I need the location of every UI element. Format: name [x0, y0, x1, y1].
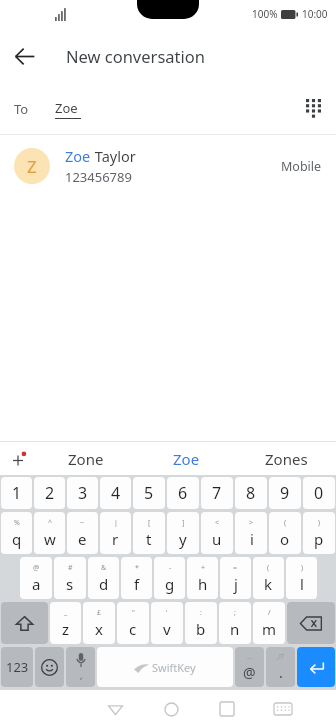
- staticText: ;: [234, 608, 236, 618]
- staticText: *: [135, 563, 139, 573]
- button[interactable]: |: [100, 512, 131, 554]
- button[interactable]: Shift: [1, 602, 48, 644]
- button[interactable]: @: [20, 557, 52, 599]
- button[interactable]: 0: [303, 477, 335, 509]
- button[interactable]: [: [133, 512, 165, 554]
- staticText: Zoe: [55, 99, 78, 117]
- staticText: %: [14, 518, 20, 528]
- staticText: m: [262, 619, 277, 639]
- staticText: 8: [246, 482, 256, 504]
- staticText: z: [62, 619, 70, 639]
- button[interactable]: &: [88, 557, 119, 599]
- button[interactable]: Dialpad: [290, 86, 336, 132]
- button[interactable]: ,!?: [266, 647, 295, 687]
- staticText: .: [279, 663, 283, 682]
- staticText: w: [44, 529, 56, 549]
- staticText: 10:00: [302, 7, 328, 21]
- button[interactable]: ': [151, 602, 183, 644]
- staticText: 7: [212, 482, 222, 504]
- staticText: 9: [280, 482, 290, 504]
- button[interactable]: Z: [0, 135, 336, 197]
- staticText: r: [112, 529, 119, 549]
- button[interactable]: ": [117, 602, 149, 644]
- button[interactable]: <: [201, 512, 233, 554]
- button[interactable]: 2: [34, 477, 65, 509]
- button[interactable]: ^: [34, 512, 65, 554]
- button[interactable]: ]: [167, 512, 199, 554]
- button[interactable]: £: [83, 602, 115, 644]
- staticText: =: [233, 563, 238, 573]
- staticText: 0: [314, 482, 324, 504]
- staticText: ): [301, 563, 304, 573]
- button[interactable]: …: [235, 647, 264, 687]
- staticText: :: [200, 608, 202, 618]
- staticText: 3: [78, 482, 88, 504]
- staticText: v: [163, 619, 171, 639]
- staticText: n: [230, 619, 240, 639]
- button[interactable]: Backspace: [287, 602, 335, 644]
- staticText: New conversation: [66, 45, 205, 67]
- button[interactable]: Emoji: [35, 647, 64, 687]
- button[interactable]: Zones: [236, 442, 336, 475]
- button[interactable]: Hide keyboard: [255, 690, 311, 728]
- button[interactable]: +: [187, 557, 218, 599]
- staticText: Zoe: [173, 449, 200, 469]
- staticText: ': [166, 608, 168, 618]
- button[interactable]: 8: [235, 477, 267, 509]
- staticText: <: [215, 518, 220, 528]
- button[interactable]: 5: [133, 477, 165, 509]
- button[interactable]: :: [185, 602, 217, 644]
- staticText: 123456789: [65, 168, 132, 186]
- staticText: 123: [6, 658, 29, 676]
- staticText: y: [179, 529, 187, 549]
- staticText: #: [68, 563, 73, 573]
- staticText: [: [148, 518, 151, 528]
- staticText: 100%: [252, 7, 278, 21]
- staticText: b: [196, 619, 206, 639]
- button[interactable]: ;: [219, 602, 251, 644]
- button[interactable]: *: [121, 557, 152, 599]
- staticText: @: [33, 563, 40, 573]
- button[interactable]: Zone: [36, 442, 136, 475]
- button[interactable]: /: [253, 602, 285, 644]
- staticText: c: [129, 619, 137, 639]
- staticText: p: [314, 529, 324, 549]
- button[interactable]: %: [1, 512, 32, 554]
- button[interactable]: _: [50, 602, 81, 644]
- button[interactable]: Recent apps: [199, 690, 255, 728]
- button[interactable]: Space: [97, 647, 233, 687]
- button[interactable]: (: [269, 512, 301, 554]
- staticText: …: [247, 652, 253, 662]
- button[interactable]: ): [286, 557, 317, 599]
- staticText: e: [78, 529, 87, 549]
- staticText: h: [198, 574, 208, 594]
- staticText: s: [66, 574, 74, 594]
- button[interactable]: Back: [87, 690, 143, 728]
- staticText: o: [280, 529, 290, 549]
- button[interactable]: Enter: [297, 647, 335, 687]
- button[interactable]: =: [220, 557, 251, 599]
- button[interactable]: ): [303, 512, 335, 554]
- button[interactable]: 123: [1, 647, 33, 687]
- button[interactable]: 9: [269, 477, 301, 509]
- staticText: 1: [12, 482, 22, 504]
- button[interactable]: More options: [0, 442, 36, 475]
- button[interactable]: Voice input: [66, 647, 95, 687]
- button[interactable]: ~: [67, 512, 98, 554]
- button[interactable]: >: [235, 512, 267, 554]
- button[interactable]: 1: [1, 477, 32, 509]
- button[interactable]: Home: [143, 690, 199, 728]
- button[interactable]: -: [154, 557, 185, 599]
- button[interactable]: Zoe: [136, 442, 236, 475]
- button[interactable]: 7: [201, 477, 233, 509]
- button[interactable]: 6: [167, 477, 199, 509]
- button[interactable]: Back: [0, 32, 48, 80]
- staticText: d: [99, 574, 109, 594]
- button[interactable]: #: [54, 557, 86, 599]
- staticText: ]: [182, 518, 185, 528]
- staticText: a: [32, 574, 41, 594]
- button[interactable]: 3: [67, 477, 98, 509]
- staticText: 5: [144, 482, 154, 504]
- button[interactable]: 4: [100, 477, 131, 509]
- button[interactable]: (: [253, 557, 284, 599]
